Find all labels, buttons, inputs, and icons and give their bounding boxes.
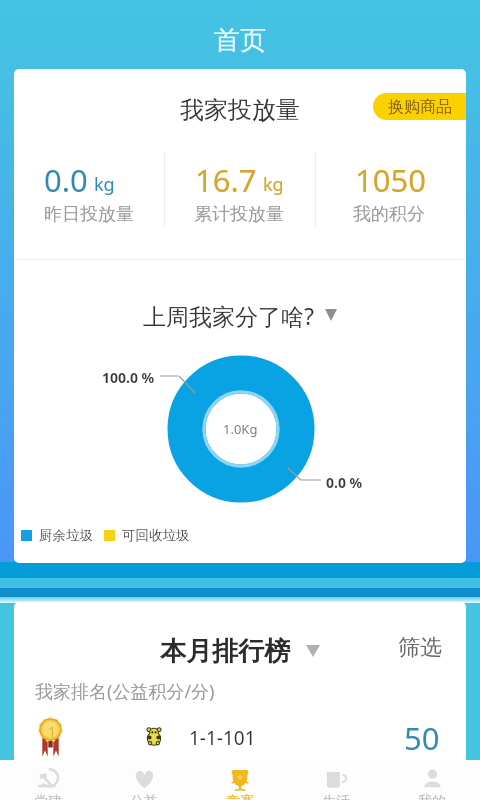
staticText: 100.0 % xyxy=(102,368,155,387)
staticText: 竞赛 xyxy=(226,793,254,800)
button[interactable]: 0.0 xyxy=(14,152,164,228)
staticText: 1-1-101 xyxy=(189,725,256,751)
staticText: 党建 xyxy=(34,793,62,800)
staticText: 首页 xyxy=(214,24,266,57)
staticText: kg xyxy=(94,172,115,197)
button[interactable]: 公益 xyxy=(96,760,192,800)
staticText: 换购商品 xyxy=(388,97,452,117)
staticText: 50 xyxy=(404,717,440,759)
staticText: 本月排行榜 xyxy=(160,635,290,668)
staticText: 我家投放量 xyxy=(14,95,466,125)
staticText: kg xyxy=(263,172,284,197)
staticText: 生活 xyxy=(322,793,350,800)
staticText: 昨日投放量 xyxy=(44,203,134,226)
staticText: 1.0Kg xyxy=(223,420,258,438)
staticText: 累计投放量 xyxy=(194,203,284,226)
button[interactable]: 生活 xyxy=(288,760,384,800)
staticText: 0.0 xyxy=(44,159,88,201)
button[interactable]: 党建 xyxy=(0,760,96,800)
button[interactable]: 1 xyxy=(14,706,466,762)
staticText: 上周我家分了啥? xyxy=(143,300,314,331)
button[interactable]: 筛选 xyxy=(390,628,450,668)
staticText: 16.7 xyxy=(195,159,257,201)
staticText: 1050 xyxy=(355,159,426,201)
staticText: 可回收垃圾 xyxy=(122,527,190,544)
staticText: 我的 xyxy=(418,793,446,800)
staticText: 厨余垃圾 xyxy=(39,527,93,544)
staticText: 公益 xyxy=(130,793,158,800)
button[interactable]: 1050 xyxy=(314,152,464,228)
staticText: 1 xyxy=(48,722,57,741)
button[interactable]: 我的 xyxy=(384,760,480,800)
button[interactable]: 16.7 xyxy=(164,152,314,228)
staticText: 我家排名(公益积分/分) xyxy=(35,679,215,704)
button[interactable]: 竞赛 xyxy=(192,760,288,800)
button[interactable]: 换购商品 xyxy=(373,93,466,120)
staticText: 我的积分 xyxy=(353,203,425,226)
staticText: 筛选 xyxy=(398,634,442,662)
staticText: 0.0 % xyxy=(326,473,363,492)
